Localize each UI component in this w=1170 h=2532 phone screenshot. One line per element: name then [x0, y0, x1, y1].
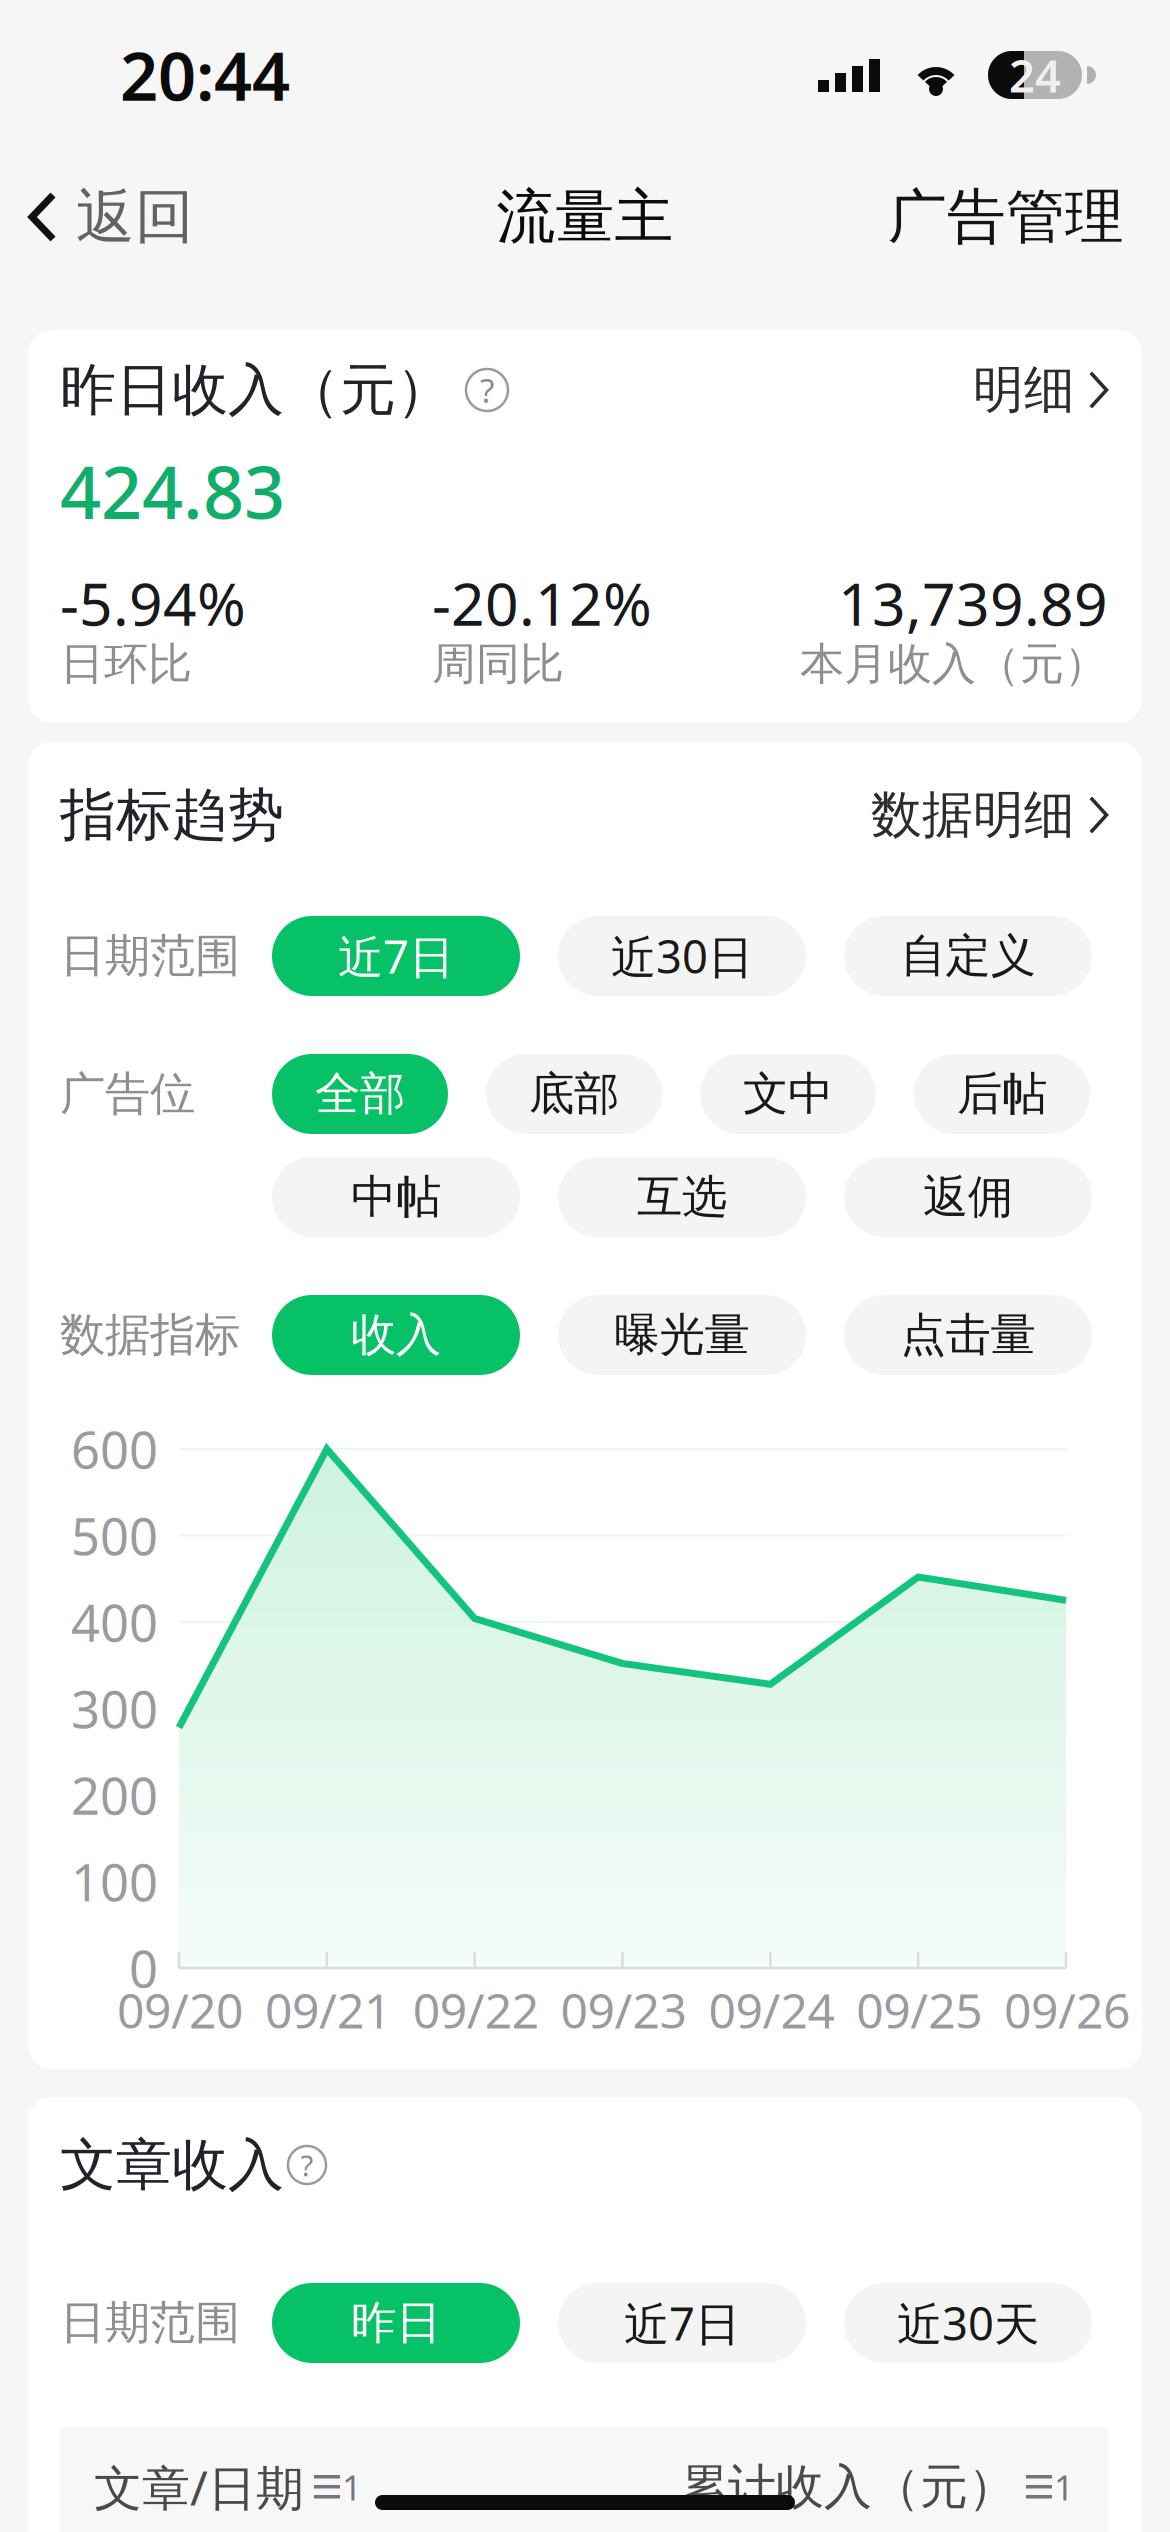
- staticText: 全部: [315, 1066, 405, 1122]
- staticText: 近7日: [338, 926, 454, 986]
- staticText: 600: [71, 1415, 158, 1483]
- button[interactable]: 后帖: [914, 1054, 1090, 1134]
- staticText: 中帖: [351, 1169, 441, 1225]
- staticText: 周同比: [432, 637, 564, 691]
- staticText: 09/22: [413, 1978, 539, 2042]
- staticText: 点击量: [900, 1307, 1035, 1363]
- staticText: 400: [71, 1588, 158, 1656]
- staticText: 文章/日期: [94, 2455, 304, 2519]
- button[interactable]: 排序: [314, 2470, 362, 2504]
- staticText: 明细: [973, 359, 1075, 421]
- staticText: 数据指标: [60, 1307, 240, 1363]
- button[interactable]: 全部: [272, 1054, 448, 1134]
- staticText: 1: [1054, 2464, 1074, 2510]
- button[interactable]: 收入: [272, 1295, 520, 1375]
- staticText: 424.83: [60, 443, 285, 539]
- staticText: 广告位: [60, 1066, 195, 1122]
- staticText: 指标趋势: [60, 781, 284, 849]
- staticText: 昨日收入（元）: [60, 356, 452, 424]
- staticText: 200: [71, 1761, 158, 1829]
- button[interactable]: 返回: [0, 163, 194, 271]
- button[interactable]: 互选: [558, 1157, 806, 1237]
- button[interactable]: 中帖: [272, 1157, 520, 1237]
- button[interactable]: 近30日: [558, 916, 806, 996]
- staticText: 1: [342, 2464, 362, 2510]
- staticText: ?: [480, 368, 494, 412]
- staticText: 近7日: [624, 2293, 740, 2353]
- staticText: 500: [71, 1502, 158, 1569]
- staticText: 日环比: [60, 637, 192, 691]
- button[interactable]: 返佣: [844, 1157, 1092, 1237]
- staticText: ?: [300, 2145, 313, 2184]
- button[interactable]: 近7日: [272, 916, 520, 996]
- button[interactable]: 自定义: [844, 916, 1092, 996]
- button[interactable]: 昨日: [272, 2283, 520, 2363]
- staticText: 曝光量: [614, 1307, 749, 1363]
- button[interactable]: 点击量: [844, 1295, 1092, 1375]
- button[interactable]: 广告管理: [888, 163, 1170, 271]
- staticText: 互选: [637, 1169, 727, 1225]
- staticText: 数据明细: [871, 784, 1075, 846]
- staticText: -20.12%: [432, 564, 652, 642]
- staticText: 13,739.89: [838, 564, 1108, 642]
- button[interactable]: 明细: [973, 351, 1108, 429]
- staticText: 日期范围: [60, 2295, 240, 2351]
- staticText: 广告管理: [888, 181, 1124, 253]
- button[interactable]: 排序: [1026, 2470, 1074, 2504]
- staticText: 09/25: [856, 1978, 982, 2042]
- staticText: 09/20: [117, 1978, 243, 2042]
- staticText: 日期范围: [60, 928, 240, 984]
- button[interactable]: 近30天: [844, 2283, 1092, 2363]
- staticText: 0: [129, 1934, 158, 2002]
- staticText: 返回: [76, 181, 194, 253]
- staticText: 文中: [743, 1066, 833, 1122]
- button[interactable]: 说明: [466, 369, 508, 411]
- staticText: 09/23: [560, 1978, 686, 2042]
- staticText: 昨日: [351, 2295, 441, 2351]
- staticText: 收入: [351, 1307, 441, 1363]
- staticText: 累计收入（元）: [680, 2457, 1016, 2516]
- staticText: 09/26: [1004, 1978, 1130, 2042]
- staticText: 文章收入: [60, 2131, 284, 2199]
- button[interactable]: 文中: [700, 1054, 876, 1134]
- staticText: 自定义: [900, 928, 1035, 984]
- staticText: 09/21: [265, 1978, 391, 2042]
- button[interactable]: 说明: [288, 2146, 326, 2184]
- button[interactable]: 数据明细: [871, 776, 1108, 854]
- staticText: 24: [1009, 45, 1061, 105]
- staticText: 100: [71, 1848, 158, 1915]
- button[interactable]: 近7日: [558, 2283, 806, 2363]
- staticText: 底部: [529, 1066, 619, 1122]
- staticText: 20:44: [120, 31, 290, 119]
- staticText: 近30天: [897, 2293, 1039, 2353]
- button[interactable]: 底部: [486, 1054, 662, 1134]
- staticText: 后帖: [957, 1066, 1047, 1122]
- staticText: 09/24: [708, 1978, 834, 2042]
- staticText: 300: [71, 1675, 158, 1742]
- staticText: 返佣: [923, 1169, 1013, 1225]
- staticText: 本月收入（元）: [800, 637, 1108, 691]
- staticText: 流量主: [496, 181, 673, 253]
- staticText: 近30日: [611, 926, 753, 986]
- staticText: -5.94%: [60, 564, 246, 642]
- button[interactable]: 曝光量: [558, 1295, 806, 1375]
